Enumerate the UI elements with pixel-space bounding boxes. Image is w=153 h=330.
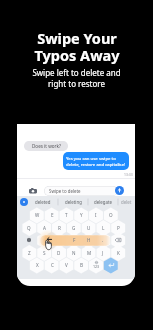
button[interactable]: M	[82, 245, 96, 261]
button[interactable]: Q	[22, 220, 36, 236]
button[interactable]: E	[45, 207, 59, 223]
button[interactable]: F	[67, 232, 81, 248]
staticText: deleted	[35, 199, 51, 205]
button[interactable]: J	[96, 245, 110, 261]
staticText: Swipe to delete	[49, 188, 81, 194]
button[interactable]: V	[59, 257, 73, 273]
staticText: K	[117, 250, 120, 256]
button[interactable]: .	[96, 232, 110, 248]
button[interactable]: C	[45, 257, 59, 273]
staticText: O	[109, 212, 113, 218]
staticText: R	[58, 225, 61, 231]
staticText: B	[80, 262, 83, 268]
button[interactable]: X	[30, 257, 44, 273]
staticText: P	[117, 225, 120, 231]
staticText: Yes you can use swipe to delete, restore…	[66, 155, 126, 167]
staticText: L	[102, 225, 105, 231]
staticText: Swipe left to delete and right to restor…	[32, 67, 121, 89]
staticText: I	[95, 212, 97, 218]
button[interactable]: K	[111, 245, 125, 261]
button[interactable]: Y	[74, 207, 88, 223]
button[interactable]: 123	[89, 257, 103, 273]
button[interactable]: deleting	[58, 196, 88, 208]
staticText: H	[87, 237, 91, 243]
staticText: 13:33	[124, 172, 133, 177]
staticText: Does it work?	[32, 143, 61, 149]
staticText: .	[102, 237, 104, 243]
button[interactable]: Key	[52, 232, 66, 248]
staticText: T	[65, 212, 68, 218]
staticText: C	[51, 262, 54, 268]
staticText: deleting	[65, 199, 82, 205]
staticText: W	[35, 212, 40, 218]
staticText: Q	[27, 225, 31, 231]
button[interactable]: G	[67, 220, 81, 236]
staticText: N	[72, 250, 76, 256]
button[interactable]: N	[67, 245, 81, 261]
button[interactable]: Send	[115, 186, 124, 195]
button[interactable]: B	[74, 257, 88, 273]
button[interactable]: I	[89, 207, 103, 223]
button[interactable]: W	[30, 207, 44, 223]
staticText: U	[87, 225, 91, 231]
staticText: G	[72, 225, 76, 231]
staticText: delegate	[94, 199, 113, 205]
button[interactable]: P	[111, 220, 125, 236]
button[interactable]: Swipe to delete	[44, 186, 118, 196]
button[interactable]: A	[37, 220, 51, 236]
button[interactable]: Backspace	[111, 232, 125, 248]
staticText: 123	[93, 264, 100, 269]
button[interactable]: S	[37, 245, 51, 261]
button[interactable]: Keyboard settings	[20, 198, 28, 206]
other: Swipe left gesture	[44, 234, 54, 251]
staticText: D	[57, 250, 61, 256]
button[interactable]: U	[82, 220, 96, 236]
staticText: Swipe Your Typos Away	[34, 28, 120, 65]
staticText: F	[73, 237, 76, 243]
button[interactable]: D	[52, 245, 66, 261]
button[interactable]: Enter	[104, 257, 118, 273]
button[interactable]: T	[59, 207, 73, 223]
staticText: X	[36, 262, 39, 268]
button[interactable]: Key	[37, 232, 51, 248]
staticText: S	[43, 250, 46, 256]
staticText: Y	[80, 212, 83, 218]
button[interactable]: delegate	[88, 196, 118, 208]
staticText: V	[65, 262, 68, 268]
staticText: E	[51, 212, 54, 218]
button[interactable]: deleted	[28, 196, 58, 208]
button[interactable]: L	[96, 220, 110, 236]
button[interactable]: Shift	[22, 232, 36, 248]
button[interactable]: O	[104, 207, 118, 223]
button[interactable]: Camera	[28, 186, 37, 195]
button[interactable]: H	[82, 232, 96, 248]
button[interactable]: Z	[22, 245, 36, 261]
staticText: A	[43, 225, 46, 231]
staticText: delet	[121, 199, 132, 205]
staticText: M	[87, 250, 92, 256]
staticText: J	[102, 250, 104, 256]
staticText: Z	[28, 250, 31, 256]
button[interactable]: R	[52, 220, 66, 236]
